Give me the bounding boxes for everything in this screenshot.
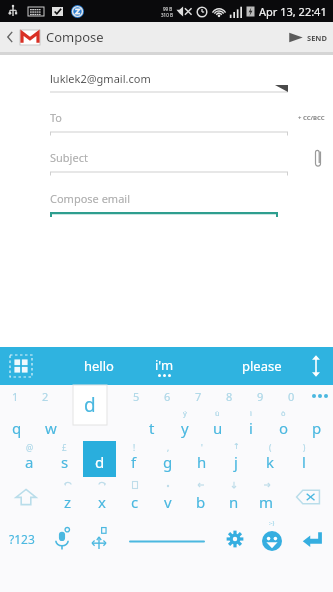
button[interactable]: 7 [183,385,214,407]
button[interactable]: i'm [153,354,176,379]
button[interactable] [60,385,90,407]
staticText: SEND [307,33,327,43]
button[interactable]: 8 [214,385,245,407]
button[interactable]: z [51,477,85,517]
staticText: l [302,452,306,472]
button[interactable]: SEND [288,31,327,44]
button[interactable]: hello [80,353,118,379]
button[interactable]: ?123 [0,517,43,561]
button[interactable]: ( [253,441,287,477]
button[interactable]: 0 [276,385,307,407]
button[interactable]: ) [287,441,321,477]
staticText: h [197,452,207,472]
staticText: t [149,418,155,438]
button[interactable]: x [85,477,118,517]
button[interactable]: Move cursor [80,517,117,561]
button[interactable]: Compose email [50,179,278,217]
button[interactable]: 2 [30,385,60,407]
staticText: d [84,392,96,418]
staticText: 0 [288,389,295,404]
staticText: n [229,492,239,512]
button[interactable]: é [68,407,102,441]
staticText: please [242,357,282,375]
button[interactable]: Backspace [283,477,333,517]
button[interactable]: Emoji [253,517,290,561]
button[interactable]: ↑ [219,441,253,477]
staticText: x [98,492,106,512]
staticText: k [266,452,275,472]
button[interactable]: m [250,477,283,517]
button[interactable]: Back [5,28,104,46]
staticText: g [163,452,173,472]
staticText: ?123 [9,531,35,547]
button[interactable]: ' [185,441,219,477]
button[interactable]: ù [201,407,234,441]
staticText: @ [26,442,34,453]
button[interactable]: luklek2@gmail.com [50,63,288,93]
staticText: f [131,452,137,472]
staticText: ↑ [233,442,240,451]
staticText: 5 [133,389,140,404]
button[interactable]: n [217,477,250,517]
button[interactable]: Toolbar [10,355,32,377]
button[interactable]: w [34,407,68,441]
staticText: , [167,442,170,453]
button[interactable]: 1 [0,385,30,407]
button[interactable] [90,385,121,407]
staticText: s [61,452,69,472]
staticText: é [83,408,88,418]
staticText: u [213,418,223,438]
staticText: + CC/BCC [298,114,325,122]
button[interactable]: d [82,441,117,477]
button[interactable]: b [184,477,217,517]
button[interactable]: Space [117,517,216,561]
staticText: ý [183,408,187,418]
staticText: o [279,418,289,438]
button[interactable]: p [300,407,333,441]
button[interactable]: ý [168,407,201,441]
button[interactable]: More [307,385,333,407]
staticText: v [164,492,172,512]
button[interactable]: + CC/BCC [296,112,327,124]
button[interactable]: 9 [245,385,276,407]
button[interactable]: @ [12,441,47,477]
button[interactable]: Enter [290,517,333,561]
button[interactable]: Voice input [43,517,80,561]
button[interactable]: c [118,477,151,517]
button[interactable]: 5 [121,385,152,407]
staticText: j [234,452,238,472]
button[interactable]: ì [234,407,267,441]
button[interactable]: Attach file [309,144,327,172]
staticText: £ [62,442,67,453]
staticText: 2 [42,389,49,404]
button[interactable]: Shift [0,477,51,517]
button[interactable]: To [50,99,288,136]
staticText: 6 [164,389,171,404]
button[interactable]: , [151,441,185,477]
button[interactable]: Expand [309,354,323,378]
button[interactable]: v [151,477,184,517]
button[interactable]: ò [267,407,300,441]
button[interactable]: £ [47,441,82,477]
staticText: 99 B [163,6,173,12]
staticText: z [64,492,72,512]
button[interactable]: q [0,407,34,441]
button[interactable]: 6 [152,385,183,407]
staticText: d [95,452,105,472]
staticText: To [50,110,63,125]
button[interactable]: t [135,407,168,441]
button[interactable]: please [238,353,286,379]
button[interactable]: Settings [216,517,253,561]
staticText: a [25,452,34,472]
staticText: luklek2@gmail.com [50,71,151,86]
button[interactable]: ! [117,441,151,477]
staticText: ' [201,442,203,453]
staticText: ù [215,408,220,418]
staticText: ( [269,442,272,453]
staticText: hello [84,357,114,375]
staticText: q [12,418,22,438]
button[interactable]: Subject [50,139,288,176]
staticText: c [131,492,139,512]
staticText: ì [250,408,252,418]
